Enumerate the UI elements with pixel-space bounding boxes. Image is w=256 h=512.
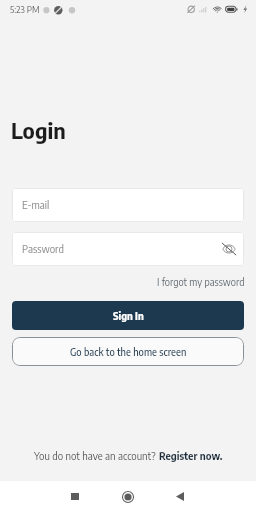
- staticText: Login: [11, 116, 66, 144]
- button[interactable]: Sign In: [12, 301, 244, 330]
- button[interactable]: E-mail: [12, 188, 244, 222]
- button[interactable]: Back: [154, 481, 206, 512]
- staticText: 5:23 PM: [10, 4, 40, 15]
- button[interactable]: Register now.: [159, 449, 223, 462]
- button[interactable]: Go back to the home screen: [12, 337, 244, 366]
- staticText: Password: [22, 242, 64, 255]
- staticText: You do not have an account?: [34, 449, 159, 462]
- staticText: Go back to the home screen: [70, 346, 187, 358]
- button[interactable]: Password: [12, 232, 244, 266]
- button[interactable]: Home: [102, 481, 154, 512]
- staticText: Sign In: [113, 309, 144, 322]
- button[interactable]: Show password: [219, 239, 239, 259]
- staticText: E-mail: [22, 198, 50, 211]
- button[interactable]: I forgot my password: [157, 276, 245, 288]
- button[interactable]: Recent apps: [49, 481, 101, 512]
